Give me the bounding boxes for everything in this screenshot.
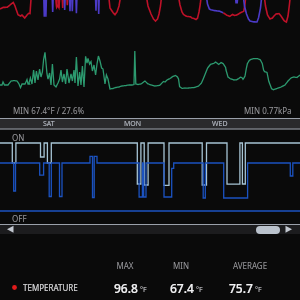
staticText: °F — [196, 285, 203, 295]
staticText: MIN 0.77kPa — [244, 105, 292, 116]
staticText: 67.4 — [170, 280, 194, 296]
button[interactable]: Scroll timeline — [256, 226, 280, 234]
staticText: 96.8 — [114, 280, 138, 296]
staticText: TEMPERATURE — [23, 282, 78, 293]
staticText: MIN 67.4°F / 27.6% — [13, 105, 85, 116]
staticText: ON — [12, 132, 25, 143]
staticText: OFF — [12, 213, 27, 224]
staticText: AVERAGE — [225, 260, 275, 271]
staticText: MAX — [110, 260, 140, 271]
staticText: °F — [140, 285, 147, 295]
staticText: MIN — [166, 260, 196, 271]
staticText: 75.7 — [229, 280, 253, 296]
staticText: MON — [124, 119, 142, 129]
staticText: SAT — [43, 119, 55, 129]
staticText: °F — [255, 285, 262, 295]
staticText: WED — [212, 119, 228, 129]
